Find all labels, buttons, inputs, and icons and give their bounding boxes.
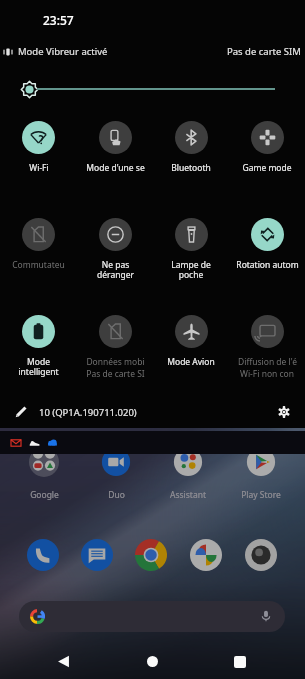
- button[interactable]: Ne pas déranger: [77, 203, 153, 280]
- staticText: Lampe de poche: [171, 259, 211, 280]
- button[interactable]: Commutateu: [0, 203, 77, 271]
- staticText: Données mobi: [86, 356, 145, 368]
- button[interactable]: [27, 539, 59, 571]
- staticText: Mode intelligent: [18, 356, 59, 377]
- button[interactable]: [29, 447, 59, 477]
- staticText: Pas de carte SI: [86, 368, 145, 380]
- staticText: Duo: [108, 489, 125, 501]
- staticText: Assistant: [170, 489, 206, 501]
- button[interactable]: Mode Avion: [153, 300, 229, 368]
- button[interactable]: [246, 447, 276, 477]
- button[interactable]: Lampe de poche: [153, 203, 229, 280]
- button[interactable]: Diffusion de l'é: [229, 300, 305, 380]
- button[interactable]: [173, 447, 203, 477]
- staticText: Pas de carte SIM: [227, 45, 301, 58]
- button[interactable]: [190, 539, 222, 571]
- staticText: Bluetooth: [171, 162, 211, 174]
- button[interactable]: Game mode: [229, 106, 305, 174]
- staticText: 10 (QP1A.190711.020): [39, 406, 137, 419]
- staticText: 23:57: [43, 12, 74, 28]
- button[interactable]: Données mobi: [77, 300, 153, 380]
- button[interactable]: Home: [147, 656, 158, 667]
- staticText: Wi-Fi: [29, 162, 49, 174]
- staticText: Google: [30, 489, 59, 501]
- staticText: Mode Vibreur activé: [18, 45, 108, 58]
- staticText: Mode Avion: [167, 356, 215, 368]
- button[interactable]: Recents: [234, 656, 246, 668]
- button[interactable]: Brightness: [21, 81, 38, 98]
- button[interactable]: [101, 447, 131, 477]
- button[interactable]: [245, 539, 277, 571]
- staticText: Diffusion de l'é: [238, 356, 297, 368]
- button[interactable]: Settings: [278, 406, 290, 418]
- staticText: Wi-Fi non con: [240, 368, 294, 380]
- button[interactable]: [19, 601, 285, 632]
- staticText: Game mode: [242, 162, 292, 174]
- button[interactable]: Rotation autom: [229, 203, 305, 271]
- staticText: Rotation autom: [236, 259, 299, 271]
- button[interactable]: Edit tiles: [14, 405, 28, 419]
- staticText: Mode d'une se: [86, 162, 145, 174]
- button[interactable]: Back: [57, 655, 70, 668]
- button[interactable]: Mode d'une se: [77, 106, 153, 174]
- button[interactable]: [81, 539, 113, 571]
- button[interactable]: [135, 539, 167, 571]
- staticText: Ne pas déranger: [97, 259, 134, 280]
- button[interactable]: Bluetooth: [153, 106, 229, 174]
- button[interactable]: Mode intelligent: [0, 300, 77, 377]
- staticText: Play Store: [241, 489, 281, 501]
- button[interactable]: Wi-Fi: [0, 106, 77, 174]
- staticText: Commutateu: [12, 259, 65, 271]
